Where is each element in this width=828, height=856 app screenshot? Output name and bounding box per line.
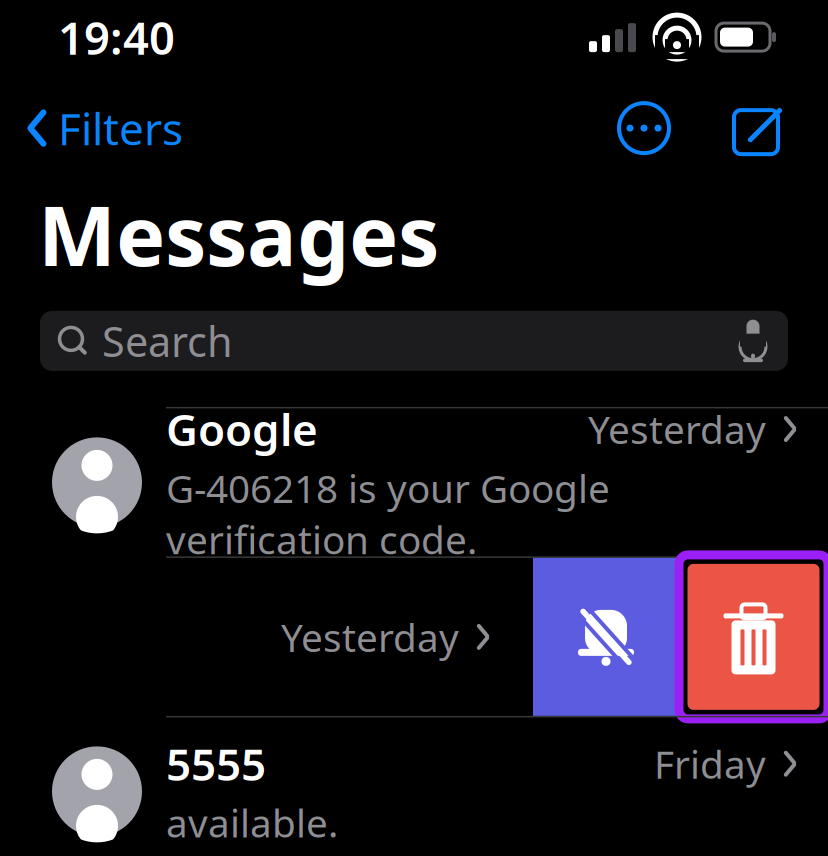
staticText: Friday (654, 738, 766, 789)
staticText: G-406218 is your Google verification cod… (166, 462, 610, 565)
staticText: 5555 (166, 734, 266, 793)
staticText: Messages (38, 179, 439, 289)
button[interactable]: Delete (679, 555, 828, 719)
button[interactable]: Yesterday (0, 558, 533, 716)
button[interactable]: Google (0, 408, 828, 556)
button[interactable]: Filters (0, 89, 183, 167)
button[interactable]: 5555 (0, 717, 828, 856)
staticText: Google (166, 400, 318, 458)
staticText: available. (166, 797, 338, 848)
button[interactable]: Compose new message (720, 89, 798, 167)
button[interactable]: Hide Alerts (533, 558, 679, 716)
button[interactable]: Search (40, 311, 788, 371)
staticText: Yesterday (281, 611, 459, 662)
staticText: 19:40 (58, 7, 175, 67)
button[interactable]: More options (606, 90, 682, 166)
staticText: Search (102, 313, 233, 368)
staticText: Filters (58, 99, 183, 157)
staticText: Yesterday (588, 403, 766, 455)
